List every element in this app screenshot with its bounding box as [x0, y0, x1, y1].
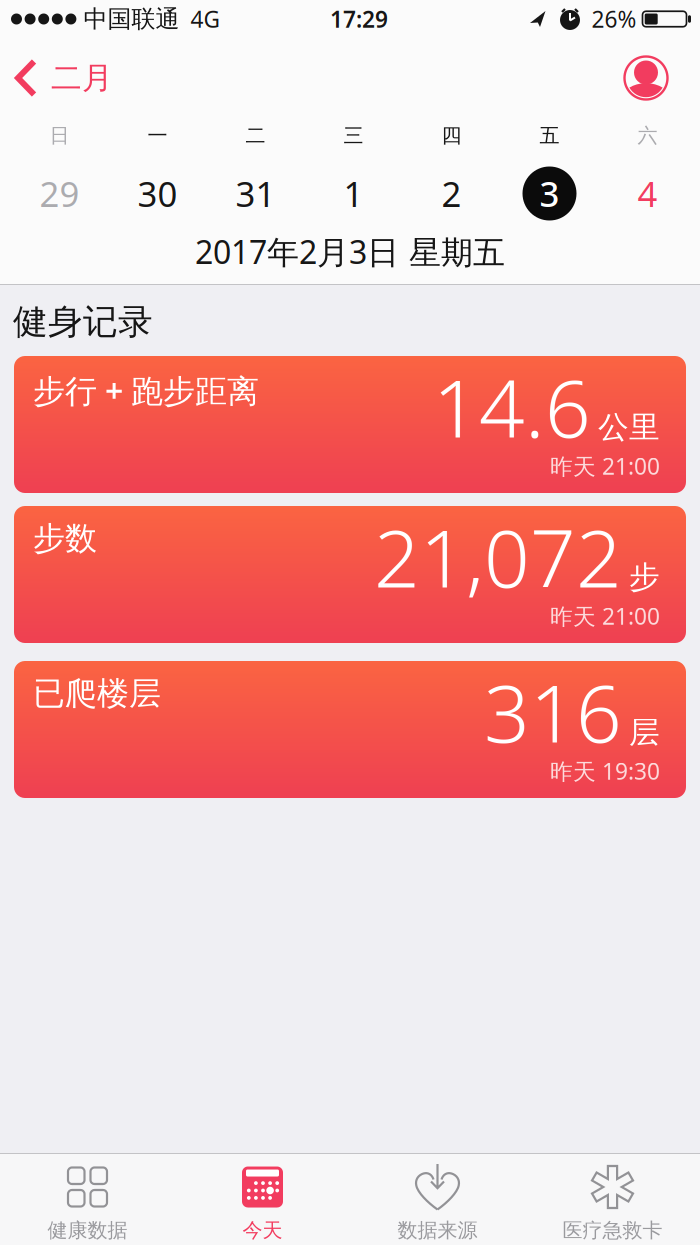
- button[interactable]: 步行 + 跑步距离: [14, 356, 686, 493]
- staticText: 日: [49, 123, 69, 148]
- staticText: 30: [137, 170, 177, 216]
- staticText: 三: [343, 123, 363, 148]
- staticText: 昨天 21:00: [550, 451, 660, 481]
- staticText: 六: [637, 123, 657, 148]
- staticText: 21,072: [374, 503, 622, 610]
- staticText: 3: [539, 170, 559, 216]
- button[interactable]: 29: [10, 160, 108, 226]
- staticText: 2017年2月3日 星期五: [195, 230, 505, 273]
- staticText: 316: [484, 658, 622, 765]
- button[interactable]: 3: [500, 160, 598, 226]
- button[interactable]: 二月: [0, 59, 113, 97]
- button[interactable]: 健康数据: [0, 1154, 175, 1243]
- button[interactable]: 1: [304, 160, 402, 226]
- button[interactable]: 医疗急救卡: [525, 1154, 700, 1243]
- staticText: 昨天 21:00: [550, 601, 660, 631]
- staticText: 29: [39, 170, 79, 216]
- button[interactable]: 30: [108, 160, 206, 226]
- button[interactable]: 已爬楼层: [14, 661, 686, 798]
- staticText: 步行 + 跑步距离: [33, 369, 259, 411]
- staticText: 医疗急救卡: [562, 1218, 662, 1243]
- staticText: 已爬楼层: [33, 674, 161, 713]
- button[interactable]: 31: [206, 160, 304, 226]
- staticText: 一: [147, 123, 167, 148]
- button[interactable]: 步数: [14, 506, 686, 643]
- staticText: 四: [441, 123, 461, 148]
- staticText: 步数: [33, 519, 97, 558]
- staticText: 1: [343, 170, 363, 216]
- staticText: 31: [235, 170, 275, 216]
- button[interactable]: 2: [402, 160, 500, 226]
- staticText: 公里: [598, 408, 660, 446]
- staticText: 4G: [190, 4, 220, 34]
- staticText: 二月: [51, 59, 113, 97]
- staticText: 4: [637, 170, 657, 216]
- staticText: 步: [629, 558, 660, 596]
- staticText: 14.6: [433, 353, 591, 460]
- staticText: 二: [245, 123, 265, 148]
- staticText: 今天: [242, 1218, 282, 1243]
- staticText: 26%: [591, 4, 636, 34]
- button[interactable]: 4: [598, 160, 696, 226]
- button[interactable]: 今天: [175, 1154, 350, 1243]
- button[interactable]: [623, 55, 669, 101]
- staticText: 五: [539, 123, 559, 148]
- staticText: 数据来源: [397, 1218, 477, 1243]
- staticText: 健身记录: [13, 301, 153, 343]
- staticText: 层: [629, 713, 660, 751]
- staticText: 2: [441, 170, 461, 216]
- staticText: 中国联通: [83, 4, 179, 34]
- button[interactable]: 数据来源: [350, 1154, 525, 1243]
- staticText: 昨天 19:30: [550, 756, 660, 786]
- staticText: 17:29: [330, 4, 388, 34]
- staticText: 健康数据: [47, 1218, 127, 1243]
